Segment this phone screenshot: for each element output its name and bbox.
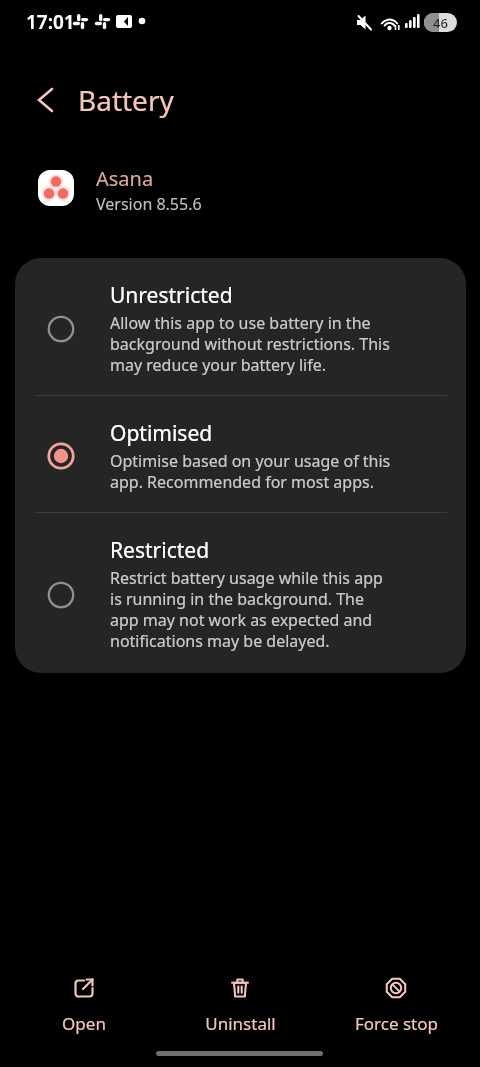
staticText: Open bbox=[62, 1012, 106, 1035]
button[interactable] bbox=[15, 258, 466, 395]
button[interactable] bbox=[15, 396, 466, 512]
staticText: 17:01 bbox=[26, 9, 75, 35]
staticText: 46 bbox=[433, 14, 448, 32]
staticText: Uninstall bbox=[205, 1012, 276, 1035]
staticText: Restrict battery usage while this app is… bbox=[110, 567, 383, 652]
staticText: Optimised bbox=[110, 419, 213, 448]
staticText: Unrestricted bbox=[110, 281, 233, 310]
staticText: Restricted bbox=[110, 536, 210, 565]
staticText: Battery bbox=[78, 81, 174, 119]
button[interactable]: Force stop bbox=[346, 976, 446, 1035]
button[interactable]: Uninstall bbox=[200, 976, 280, 1035]
staticText: Allow this app to use battery in the bac… bbox=[110, 312, 390, 376]
button[interactable]: Open bbox=[44, 976, 124, 1035]
button[interactable] bbox=[15, 513, 466, 673]
staticText: Asana bbox=[96, 165, 154, 192]
staticText: Optimise based on your usage of this app… bbox=[110, 450, 391, 493]
staticText: Force stop bbox=[355, 1012, 438, 1035]
button[interactable] bbox=[36, 87, 58, 113]
staticText: Version 8.55.6 bbox=[96, 193, 202, 215]
